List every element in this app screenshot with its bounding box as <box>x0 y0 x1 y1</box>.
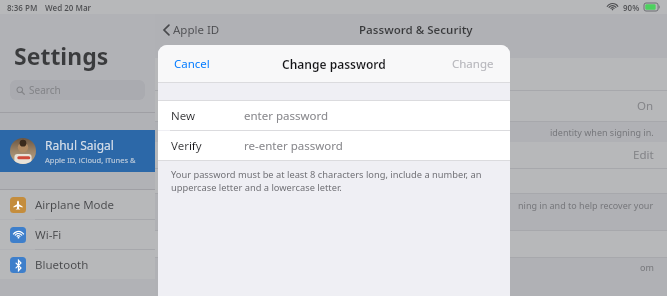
button[interactable]: Edit <box>155 142 667 168</box>
button[interactable]: Bluetooth <box>0 250 155 279</box>
button[interactable]: Airplane Mode <box>0 190 155 219</box>
button[interactable]: Wi-Fi <box>0 220 155 249</box>
staticText: ning in and to help recover your <box>518 199 654 211</box>
staticText: Apple ID <box>173 22 220 38</box>
button[interactable]: Change <box>436 49 510 79</box>
staticText: Password & Security <box>359 22 473 38</box>
staticText: Settings <box>14 40 109 71</box>
staticText: Wi-Fi <box>35 227 62 243</box>
button[interactable]: Cancel <box>158 49 226 79</box>
staticText: Airplane Mode <box>35 197 115 213</box>
staticText: Cancel <box>174 56 210 72</box>
staticText: Rahul Saigal <box>45 137 114 153</box>
button[interactable]: New <box>158 101 510 130</box>
button[interactable]: On <box>155 91 667 121</box>
staticText: Wed 20 Mar <box>45 2 92 13</box>
staticText: om <box>640 261 654 273</box>
staticText: Verify <box>171 138 202 154</box>
button[interactable]: Apple ID <box>163 22 220 38</box>
staticText: enter password <box>244 108 329 124</box>
staticText: Your password must be at least 8 charact… <box>171 168 494 194</box>
button[interactable]: Search <box>10 80 145 100</box>
staticText: 8:36 PM <box>7 2 38 13</box>
staticText: identity when signing in. <box>550 126 654 138</box>
button[interactable]: Verify <box>158 131 510 160</box>
staticText: Change password <box>282 56 386 72</box>
button[interactable]: Rahul Saigal <box>0 130 155 172</box>
staticText: Change <box>452 56 494 72</box>
staticText: Apple ID, iCloud, iTunes & <box>45 155 136 165</box>
staticText: re-enter password <box>244 138 343 154</box>
staticText: Edit <box>633 147 654 163</box>
staticText: 90% <box>623 2 640 13</box>
staticText: New <box>171 108 196 124</box>
staticText: Search <box>29 83 61 97</box>
staticText: Bluetooth <box>35 257 89 273</box>
staticText: On <box>637 98 654 114</box>
